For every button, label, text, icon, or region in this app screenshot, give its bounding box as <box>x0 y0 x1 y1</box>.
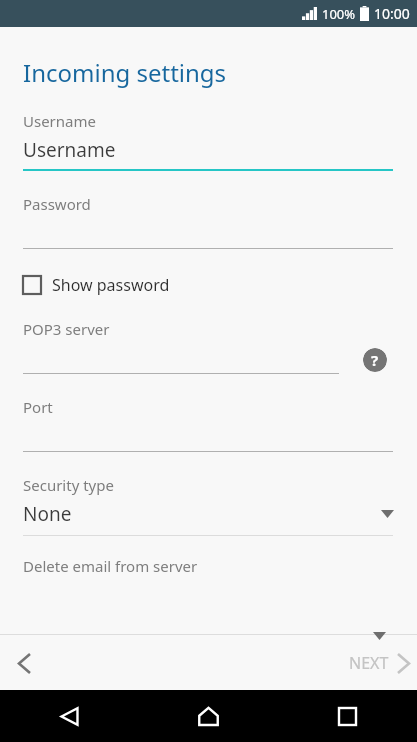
button[interactable]: Home <box>139 690 278 742</box>
button[interactable]: Security type <box>0 475 417 536</box>
button[interactable]: NEXT <box>337 644 417 682</box>
staticText: NEXT <box>349 652 389 674</box>
button[interactable]: Show password <box>0 272 417 298</box>
staticText: Security type <box>23 475 114 495</box>
button[interactable]: Port <box>0 397 417 452</box>
button[interactable]: Delete email from server <box>0 556 417 576</box>
button[interactable]: Previous <box>0 639 48 687</box>
button[interactable]: Username <box>0 111 417 171</box>
button[interactable]: Help <box>363 348 387 372</box>
staticText: Password <box>23 194 91 214</box>
button[interactable]: Recent apps <box>278 690 417 742</box>
staticText: 10:00 <box>374 4 410 23</box>
button[interactable]: Back <box>0 690 139 742</box>
button[interactable]: POP3 server <box>0 319 417 339</box>
staticText: Delete email from server <box>23 556 198 576</box>
button[interactable]: Password <box>0 194 417 249</box>
staticText: Show password <box>52 274 170 296</box>
staticText: Username <box>23 111 96 131</box>
staticText: 100% <box>322 5 356 23</box>
staticText: Username <box>23 137 116 163</box>
staticText: POP3 server <box>23 319 110 339</box>
staticText: Incoming settings <box>23 56 227 89</box>
staticText: ? <box>371 350 379 370</box>
staticText: Port <box>23 397 53 417</box>
staticText: None <box>23 501 72 527</box>
